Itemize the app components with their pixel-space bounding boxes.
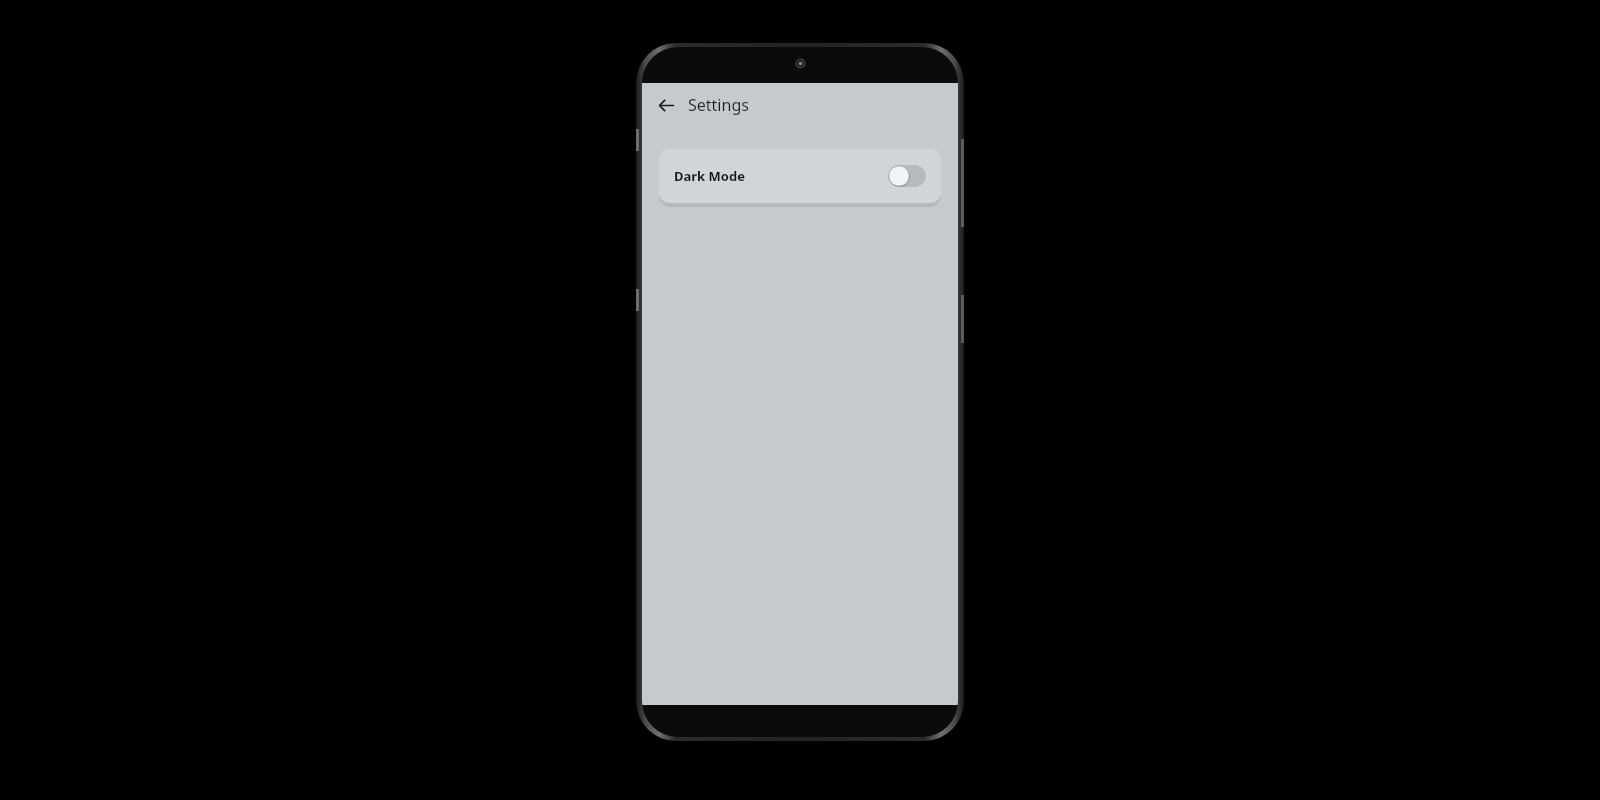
staticText: Settings: [688, 94, 749, 116]
button[interactable]: Dark Mode toggle, off: [888, 165, 926, 187]
button[interactable]: Dark Mode: [659, 149, 941, 203]
button[interactable]: Back: [650, 89, 682, 121]
staticText: Dark Mode: [674, 167, 745, 185]
